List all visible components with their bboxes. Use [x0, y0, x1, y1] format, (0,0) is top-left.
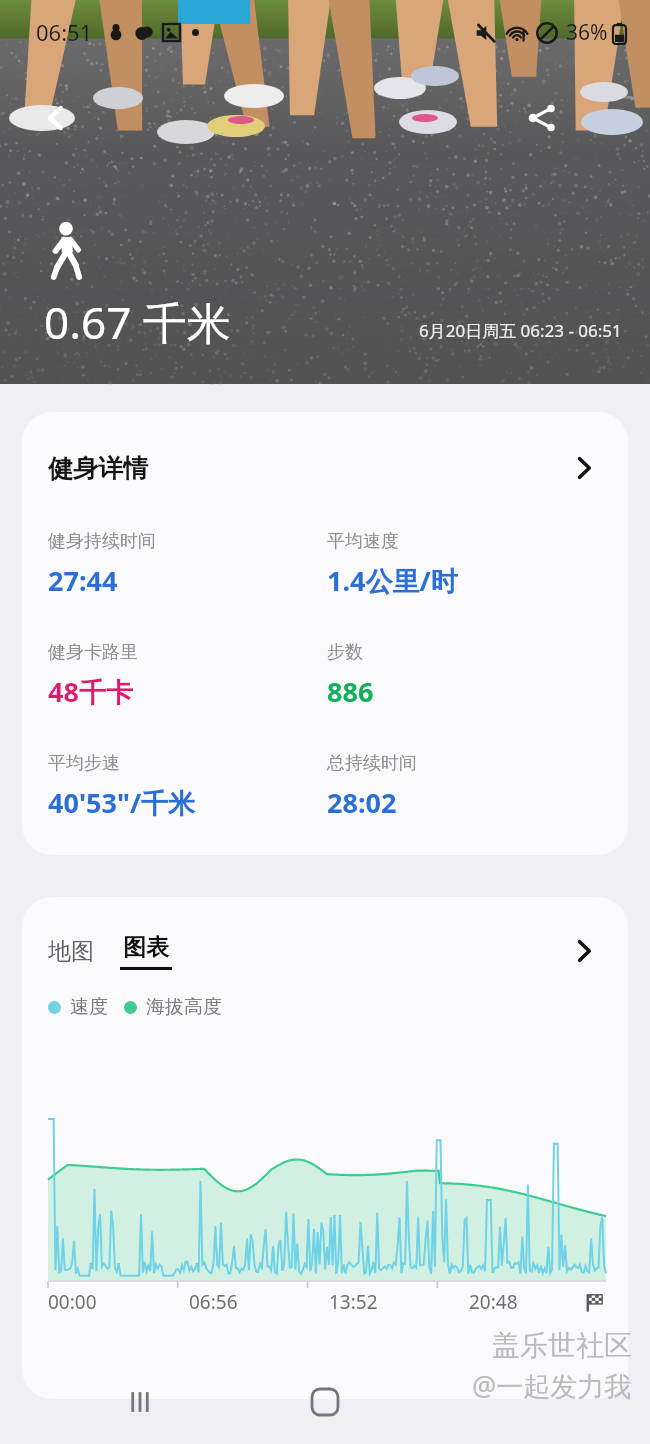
staticText: 健身详情 [48, 453, 562, 484]
staticText: 地图 [48, 937, 94, 966]
button[interactable]: 地图 [48, 937, 98, 966]
staticText: 平均步速 [48, 752, 120, 775]
staticText: 6月20日周五 06:23 - 06:51 [419, 319, 622, 342]
staticText: 平均速度 [327, 530, 399, 553]
staticText: 40'53"/千米 [48, 784, 196, 821]
staticText: 27:44 [48, 562, 118, 599]
staticText: 28:02 [327, 784, 397, 821]
button[interactable]: Home [293, 1370, 357, 1434]
button[interactable]: Open details [562, 446, 606, 490]
staticText: 13:52 [329, 1289, 378, 1315]
button[interactable]: Share [516, 92, 568, 144]
staticText: 图表 [123, 933, 169, 962]
staticText: 海拔高度 [146, 995, 222, 1019]
button[interactable]: 健身详情 [22, 412, 628, 855]
staticText: 06:51 [36, 17, 93, 47]
staticText: 盖乐世社区 [492, 1328, 632, 1363]
button[interactable]: Open details [562, 929, 606, 973]
staticText: 06:56 [189, 1289, 238, 1315]
staticText: 0.67 千米 [44, 292, 231, 352]
staticText: 步数 [327, 641, 363, 664]
staticText: 速度 [70, 995, 108, 1019]
button[interactable]: Recents [108, 1370, 172, 1434]
staticText: 36% [566, 18, 608, 47]
staticText: 总持续时间 [327, 752, 417, 775]
staticText: 886 [327, 673, 374, 710]
staticText: 健身卡路里 [48, 641, 138, 664]
staticText: 健身持续时间 [48, 530, 156, 553]
staticText: 1.4公里/时 [327, 562, 458, 599]
button[interactable]: Back [30, 92, 82, 144]
staticText: 00:00 [48, 1289, 97, 1315]
staticText: 20:48 [469, 1289, 518, 1315]
button[interactable]: 图表 [120, 933, 172, 970]
staticText: 48千卡 [48, 673, 133, 710]
staticText: @一起发力我 [472, 1367, 632, 1404]
